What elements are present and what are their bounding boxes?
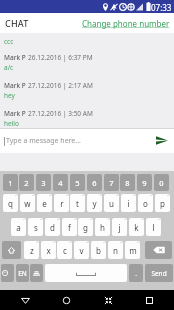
- staticText: 27.12.2016 | 2:17 AM: [28, 81, 93, 90]
- button[interactable]: k: [129, 218, 144, 236]
- button[interactable]: 7: [104, 174, 119, 191]
- button[interactable]: Type a message here...: [0, 128, 149, 153]
- staticText: ˘: [74, 218, 76, 225]
- button[interactable]: 5: [70, 174, 85, 191]
- button[interactable]: Change phone number: [78, 14, 174, 33]
- staticText: ˘: [150, 194, 152, 201]
- staticText: ˘: [103, 241, 105, 248]
- staticText: y: [92, 198, 97, 209]
- button[interactable]: f: [62, 218, 77, 236]
- staticText: j: [118, 222, 121, 233]
- button[interactable]: c: [57, 241, 72, 259]
- button[interactable]: 0: [154, 174, 169, 191]
- button[interactable]: [145, 241, 172, 259]
- staticText: Change phone number: [82, 18, 170, 29]
- staticText: a: [16, 222, 21, 233]
- button[interactable]: Send: [149, 128, 174, 153]
- button[interactable]: Recents: [133, 290, 165, 310]
- button[interactable]: Send: [145, 264, 173, 282]
- button[interactable]: x: [41, 241, 56, 259]
- staticText: 07:33: [151, 2, 172, 13]
- staticText: ˘: [82, 194, 84, 201]
- staticText: q: [8, 198, 13, 209]
- button[interactable]: m: [125, 241, 140, 259]
- button[interactable]: .: [129, 264, 143, 282]
- button[interactable]: y: [87, 194, 102, 212]
- button[interactable]: 6: [87, 174, 102, 191]
- button[interactable]: p: [155, 194, 170, 212]
- staticText: ˘: [120, 241, 122, 248]
- button[interactable]: s: [28, 218, 43, 236]
- button[interactable]: a: [11, 218, 26, 236]
- button[interactable]: b: [91, 241, 106, 259]
- staticText: w: [24, 198, 31, 209]
- button[interactable]: u: [104, 194, 119, 212]
- button[interactable]: d: [45, 218, 60, 236]
- button[interactable]: e: [37, 194, 52, 212]
- staticText: m: [129, 245, 137, 256]
- button[interactable]: Hide keyboard: [92, 290, 124, 310]
- button[interactable]: g: [78, 218, 93, 236]
- button[interactable]: i: [121, 194, 136, 212]
- staticText: ˘: [158, 218, 160, 225]
- button[interactable]: o: [138, 194, 153, 212]
- button[interactable]: [45, 264, 127, 282]
- staticText: ˘: [99, 194, 101, 201]
- button[interactable]: [2, 241, 21, 259]
- button[interactable]: 8: [120, 174, 135, 191]
- staticText: 2: [24, 178, 29, 188]
- button[interactable]: EN: [16, 264, 29, 282]
- staticText: i: [127, 198, 130, 209]
- staticText: s: [34, 222, 38, 233]
- button[interactable]: h: [95, 218, 110, 236]
- staticText: ˘: [53, 241, 55, 248]
- staticText: d: [50, 222, 55, 233]
- button[interactable]: z: [24, 241, 39, 259]
- button[interactable]: t: [70, 194, 85, 212]
- button[interactable]: v: [74, 241, 89, 259]
- staticText: ˘: [32, 194, 34, 201]
- button[interactable]: Mark P: [0, 52, 174, 73]
- staticText: .: [135, 269, 137, 278]
- button[interactable]: [30, 264, 43, 282]
- button[interactable]: 1: [3, 174, 18, 191]
- button[interactable]: Home: [50, 290, 82, 310]
- button[interactable]: j: [112, 218, 127, 236]
- staticText: ˘: [90, 218, 92, 225]
- button[interactable]: Mark P: [0, 108, 174, 129]
- button[interactable]: 4: [53, 174, 68, 191]
- staticText: p: [160, 198, 165, 209]
- staticText: f: [68, 222, 71, 233]
- staticText: u: [109, 198, 114, 209]
- button[interactable]: [1, 264, 14, 282]
- button[interactable]: 2: [19, 174, 34, 191]
- staticText: b: [96, 245, 101, 256]
- staticText: Mark P: [4, 81, 26, 90]
- staticText: 4: [58, 178, 63, 188]
- staticText: z: [30, 245, 34, 256]
- staticText: 5: [75, 178, 80, 188]
- button[interactable]: l: [146, 218, 161, 236]
- button[interactable]: 3: [36, 174, 51, 191]
- button[interactable]: Back: [9, 290, 41, 310]
- button[interactable]: q: [3, 194, 18, 212]
- staticText: ˘: [69, 241, 71, 248]
- button[interactable]: Mark P: [0, 80, 174, 101]
- staticText: t: [76, 198, 79, 209]
- button[interactable]: w: [20, 194, 35, 212]
- staticText: 8: [125, 178, 130, 188]
- staticText: ˘: [36, 241, 38, 248]
- button[interactable]: r: [54, 194, 69, 212]
- staticText: ˘: [116, 194, 118, 201]
- staticText: ˘: [57, 218, 59, 225]
- button[interactable]: n: [108, 241, 123, 259]
- staticText: n: [113, 245, 118, 256]
- staticText: EN: [18, 269, 27, 278]
- staticText: Send: [151, 269, 167, 278]
- staticText: ˘: [137, 241, 139, 248]
- staticText: r: [60, 198, 64, 209]
- staticText: e: [42, 198, 47, 209]
- staticText: ˘: [133, 194, 135, 201]
- button[interactable]: 9: [137, 174, 152, 191]
